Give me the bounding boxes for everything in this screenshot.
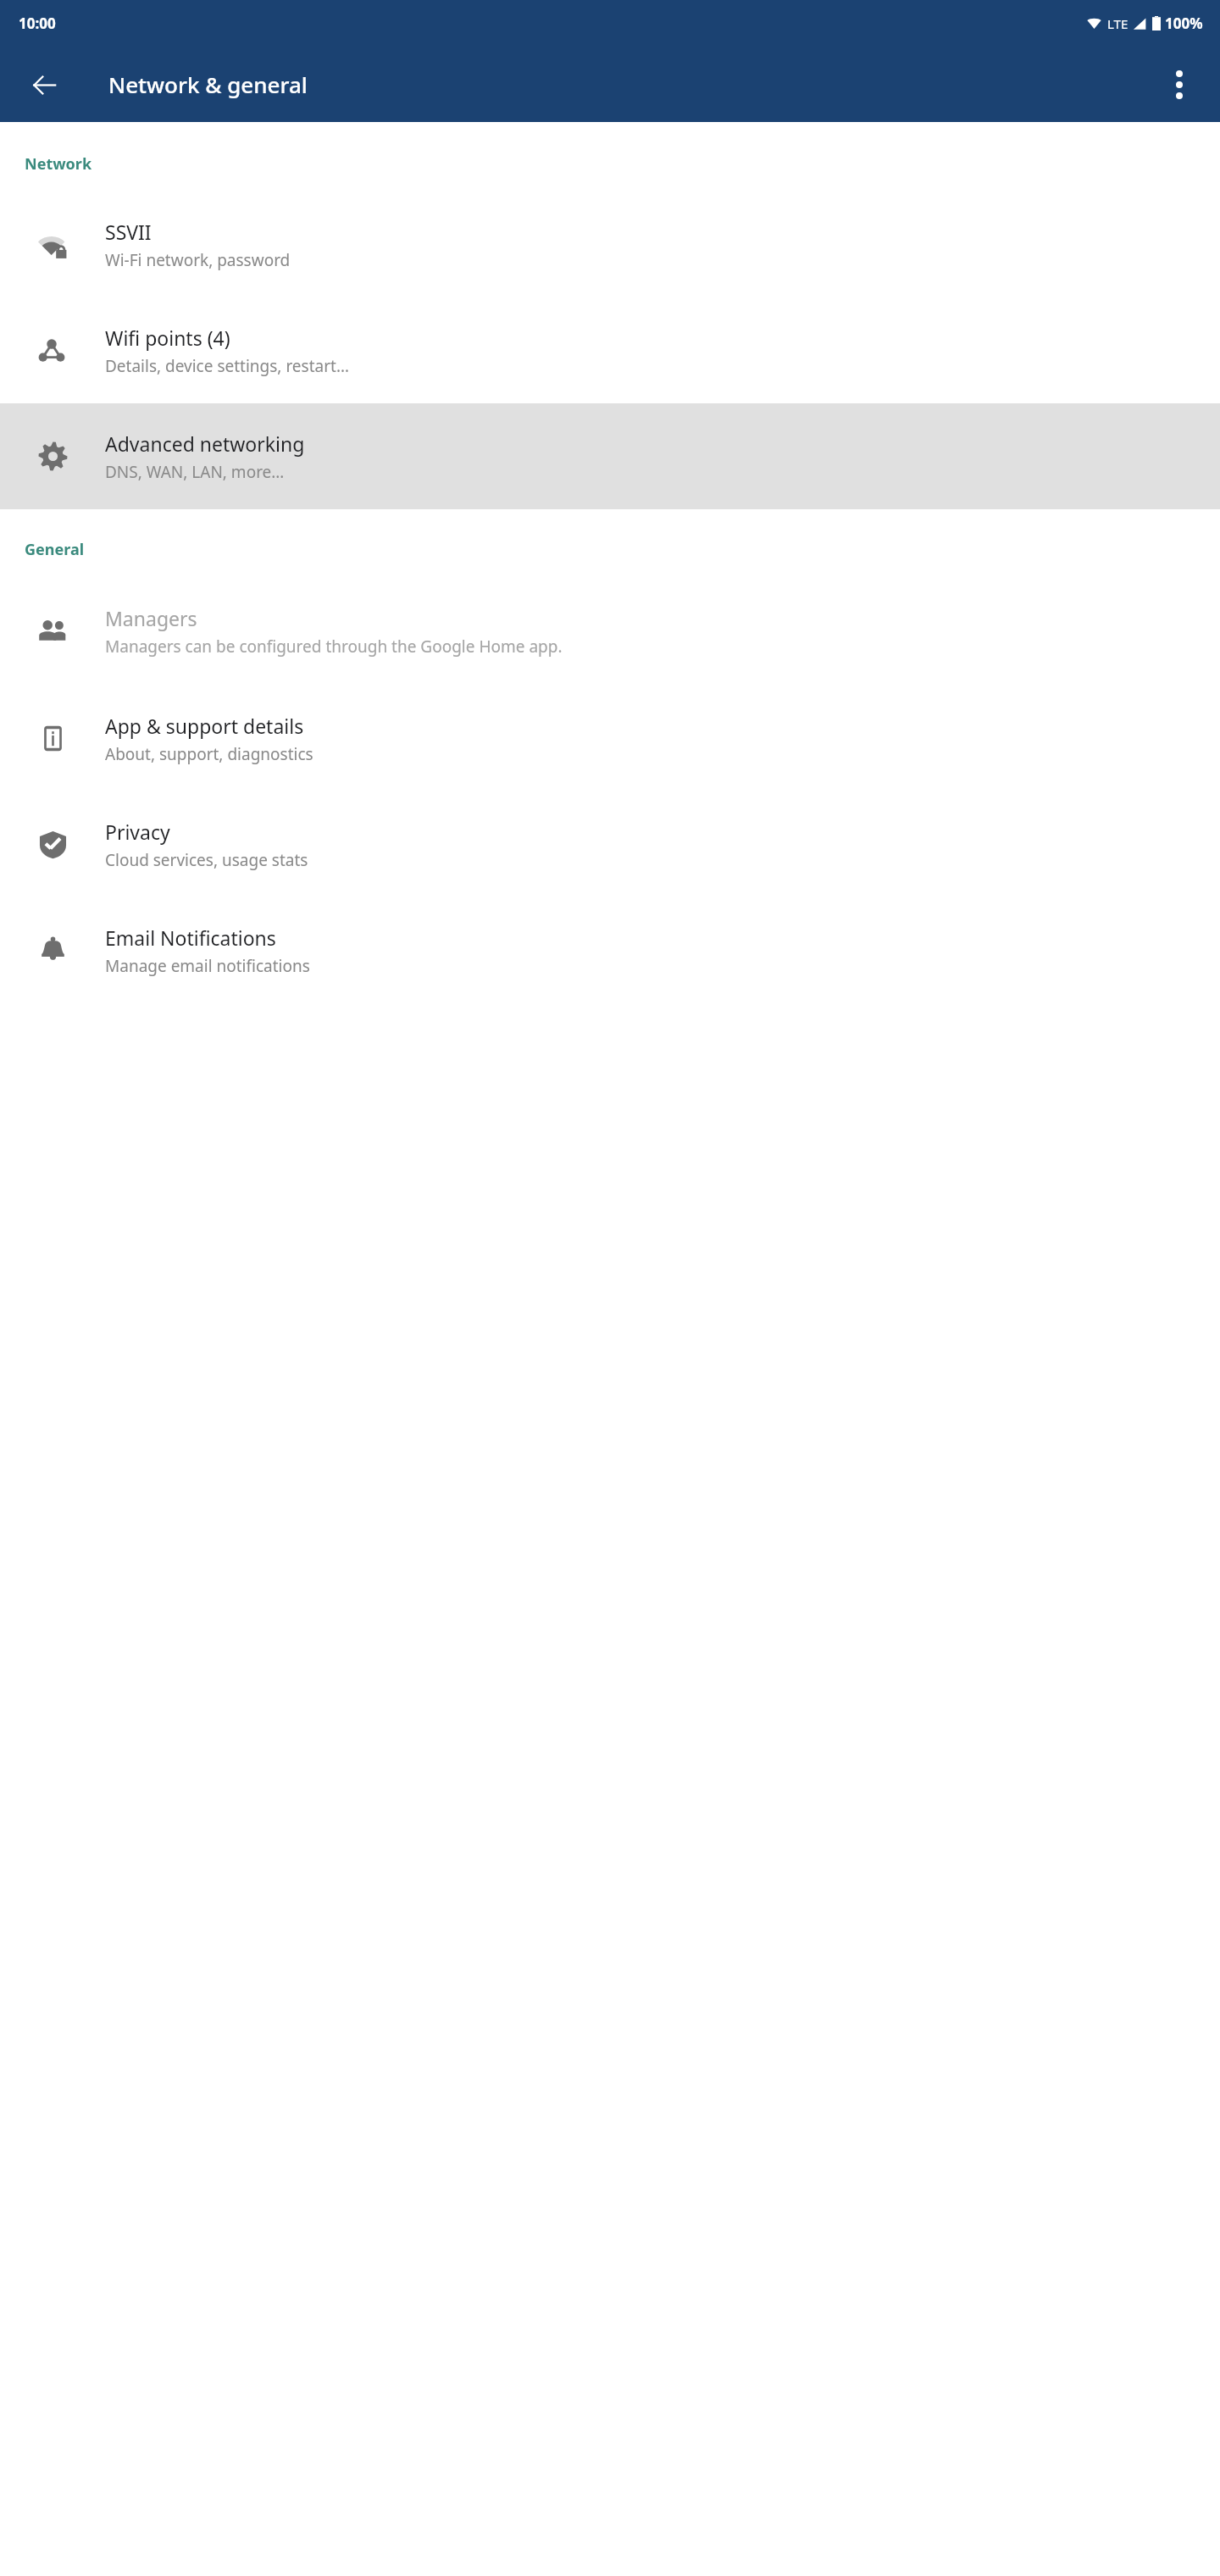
staticText: 100% (1165, 14, 1203, 33)
staticText: Details, device settings, restart… (105, 355, 349, 377)
button[interactable]: SSVII (0, 192, 1220, 297)
staticText: Advanced networking (105, 430, 305, 457)
button[interactable]: Email Notifications (0, 897, 1220, 1003)
staticText: 10:00 (19, 14, 56, 33)
button[interactable]: Wifi points (4) (0, 297, 1220, 403)
staticText: About, support, diagnostics (105, 743, 313, 765)
staticText: Managers can be configured through the G… (105, 636, 563, 658)
button[interactable]: More options (1156, 61, 1203, 108)
staticText: Privacy (105, 819, 170, 845)
staticText: LTE (1107, 15, 1128, 32)
staticText: SSVII (105, 219, 152, 245)
button[interactable]: Managers (0, 577, 1220, 686)
button[interactable]: Back (20, 61, 68, 108)
staticText: Manage email notifications (105, 955, 310, 977)
staticText: Wi-Fi network, password (105, 249, 291, 271)
staticText: Email Notifications (105, 924, 276, 951)
staticText: Managers (105, 605, 197, 631)
staticText: Cloud services, usage stats (105, 849, 308, 871)
button[interactable]: App & support details (0, 686, 1220, 791)
staticText: Network & general (108, 69, 308, 99)
staticText: General (25, 539, 85, 560)
button[interactable]: Privacy (0, 791, 1220, 897)
button[interactable]: Advanced networking (0, 403, 1220, 509)
staticText: App & support details (105, 713, 304, 739)
staticText: DNS, WAN, LAN, more… (105, 461, 285, 483)
staticText: Wifi points (4) (105, 325, 230, 351)
staticText: Network (25, 153, 92, 175)
